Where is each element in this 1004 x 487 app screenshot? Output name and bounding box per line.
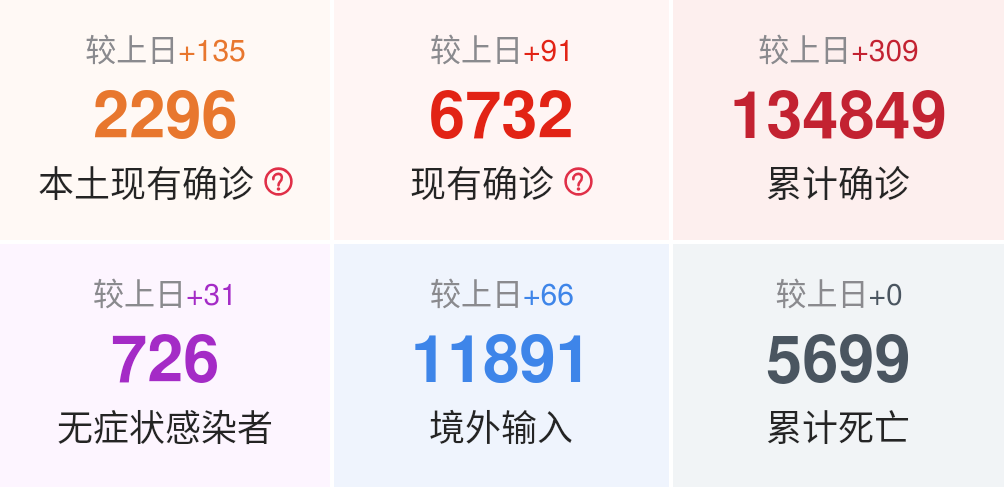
button[interactable]: 较上日+66 [334, 244, 669, 487]
staticText: 较上日+135 [85, 25, 246, 70]
button[interactable]: 较上日+91 [334, 0, 669, 240]
staticText: 2296 [93, 86, 238, 151]
staticText: 6732 [429, 86, 574, 151]
button[interactable]: 较上日+31 [0, 244, 330, 487]
button[interactable]: 较上日+309 [673, 0, 1004, 240]
button[interactable]: 较上日+135 [0, 0, 330, 240]
staticText: 累计死亡 [766, 399, 911, 451]
staticText: 726 [111, 330, 220, 395]
staticText: 境外输入 [429, 399, 574, 451]
staticText: 较上日+0 [775, 269, 903, 314]
staticText: 134849 [730, 86, 947, 151]
staticText: 本土现有确诊 [38, 155, 255, 207]
staticText: 无症状感染者 [57, 399, 274, 451]
staticText: 较上日+31 [93, 269, 237, 314]
staticText: 较上日+309 [758, 25, 919, 70]
staticText: 现有确诊 [410, 155, 555, 207]
button[interactable]: 较上日+0 [673, 244, 1004, 487]
staticText: 较上日+66 [430, 269, 574, 314]
staticText: 11891 [411, 330, 592, 395]
staticText: 5699 [766, 330, 911, 395]
other: Help [264, 167, 293, 196]
staticText: 较上日+91 [430, 25, 574, 70]
other: Help [564, 167, 593, 196]
staticText: 累计确诊 [766, 155, 911, 207]
